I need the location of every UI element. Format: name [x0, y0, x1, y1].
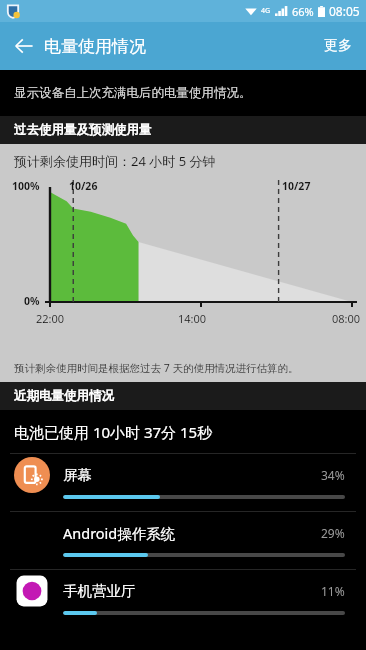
staticText: 近期电量使用情况 [14, 388, 114, 404]
staticText: 29% [321, 525, 345, 541]
staticText: 34% [321, 467, 345, 483]
button[interactable]: 屏幕 [0, 454, 366, 511]
staticText: 08:00 [332, 311, 361, 326]
staticText: 100% [12, 179, 40, 193]
button[interactable]: Android操作系统 [0, 512, 366, 569]
staticText: 过去使用量及预测使用量 [14, 122, 152, 138]
staticText: 22:00 [36, 311, 65, 326]
staticText: 0% [24, 294, 40, 308]
staticText: 手机营业厅 [63, 582, 136, 600]
staticText: 电池已使用 10小时 37分 15秒 [14, 422, 213, 442]
staticText: 08:05 [329, 3, 360, 19]
staticText: 11% [321, 583, 345, 599]
staticText: 10/27 [282, 179, 311, 193]
staticText: 预计剩余使用时间是根据您过去 7 天的使用情况进行估算的。 [14, 361, 299, 375]
button[interactable]: Back [0, 22, 48, 70]
button[interactable]: 更多 [310, 22, 366, 70]
staticText: 10/26 [69, 179, 98, 193]
staticText: Android操作系统 [63, 523, 176, 543]
staticText: 更多 [324, 37, 352, 55]
button[interactable]: 手机营业厅 [0, 570, 366, 627]
staticText: 屏幕 [63, 466, 92, 484]
staticText: 4G [261, 6, 271, 16]
staticText: 66% [292, 4, 314, 19]
staticText: 显示设备自上次充满电后的电量使用情况。 [14, 85, 252, 101]
staticText: 电量使用情况 [44, 36, 146, 57]
staticText: 14:00 [178, 311, 207, 326]
staticText: 预计剩余使用时间：24 小时 5 分钟 [14, 152, 216, 170]
